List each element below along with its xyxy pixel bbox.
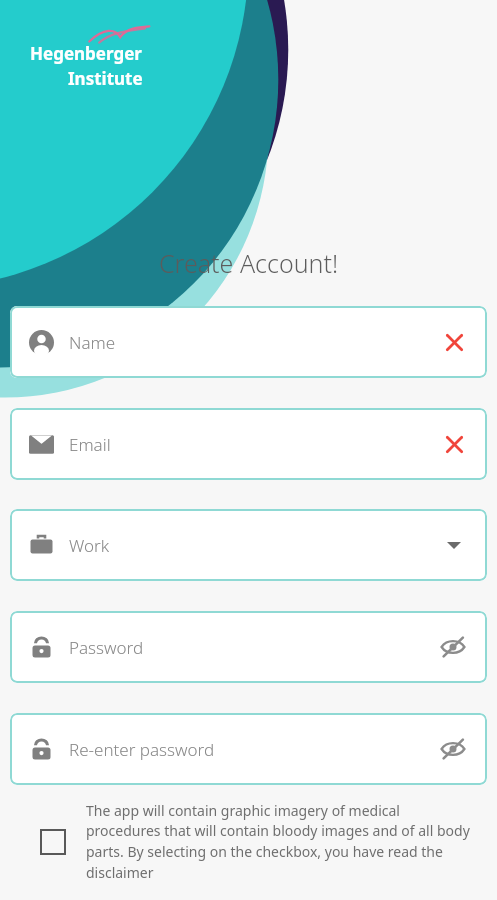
button[interactable]: Email xyxy=(10,408,487,480)
button[interactable]: Work xyxy=(10,509,487,581)
button[interactable]: Re-enter password xyxy=(10,713,487,785)
button[interactable]: Password xyxy=(10,611,487,683)
staticText: The app will contain graphic imagery of … xyxy=(86,801,475,883)
button[interactable]: Show password xyxy=(437,733,469,765)
other: Accept disclaimer checkbox xyxy=(40,829,66,855)
button[interactable]: Clear Name xyxy=(439,327,469,357)
staticText: Password xyxy=(69,636,437,659)
other: Hegenberger Institute logo xyxy=(30,42,143,90)
staticText: Email xyxy=(69,433,439,456)
staticText: Work xyxy=(69,534,439,557)
staticText: Re-enter password xyxy=(69,738,437,761)
button[interactable]: Open Work options xyxy=(439,530,469,560)
button[interactable]: Name xyxy=(10,306,487,378)
button[interactable]: Accept disclaimer checkbox xyxy=(40,801,475,883)
staticText: Institute xyxy=(68,67,143,90)
staticText: Create Account! xyxy=(0,246,497,280)
button[interactable]: Show password xyxy=(437,631,469,663)
staticText: Name xyxy=(69,331,439,354)
button[interactable]: Clear Email xyxy=(439,429,469,459)
staticText: Hegenberger xyxy=(30,42,142,65)
